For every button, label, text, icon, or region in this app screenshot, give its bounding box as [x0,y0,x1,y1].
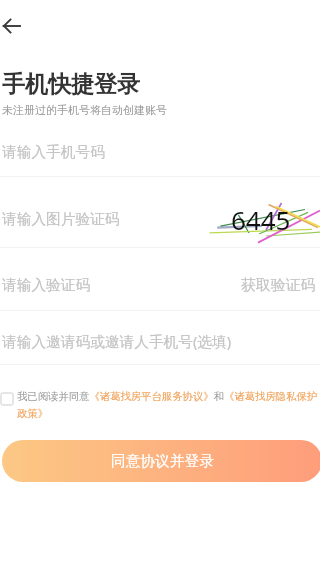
button[interactable]: 请输入验证码 [0,276,320,296]
staticText: 请输入邀请码或邀请人手机号(选填) [2,331,232,351]
staticText: 手机快捷登录 [2,70,140,99]
button[interactable]: Back [0,14,23,38]
button[interactable]: 请输入手机号码 [0,143,320,163]
button[interactable]: Agree to terms checkbox [1,393,13,405]
button[interactable]: 请输入图片验证码 [0,210,320,230]
staticText: 请输入图片验证码 [2,210,120,229]
staticText: 同意协议并登录 [111,452,214,471]
staticText: 获取验证码 [241,276,316,295]
button[interactable]: 同意协议并登录 [2,440,320,482]
staticText: 未注册过的手机号将自动创建账号 [2,103,167,117]
button[interactable]: Refresh captcha image [207,198,320,246]
button[interactable]: 请输入邀请码或邀请人手机号(选填) [0,331,320,351]
staticText: 6445 [231,202,291,237]
button[interactable]: 获取验证码 [237,270,320,301]
staticText: 请输入验证码 [2,276,91,295]
staticText: 我已阅读并同意《诸葛找房平台服务协议》和《诸葛找房隐私保护政策》 [17,390,320,420]
staticText: 请输入手机号码 [2,143,105,162]
